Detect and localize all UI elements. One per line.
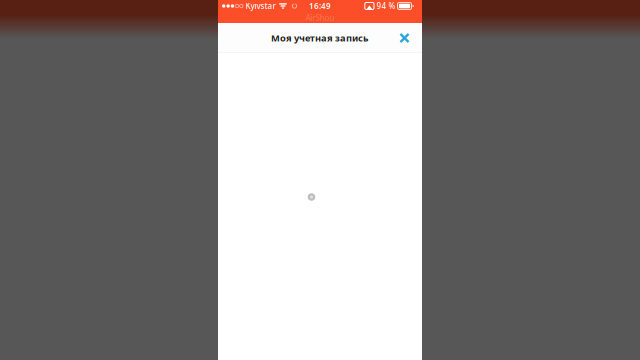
staticText: 94 % [376,1,395,11]
staticText: Kyivstar [245,1,275,11]
staticText: Моя учетная запись [271,32,369,44]
staticText: 16:49 [309,1,331,11]
staticText: AirShou [305,13,334,23]
button[interactable]: Close [391,24,417,52]
